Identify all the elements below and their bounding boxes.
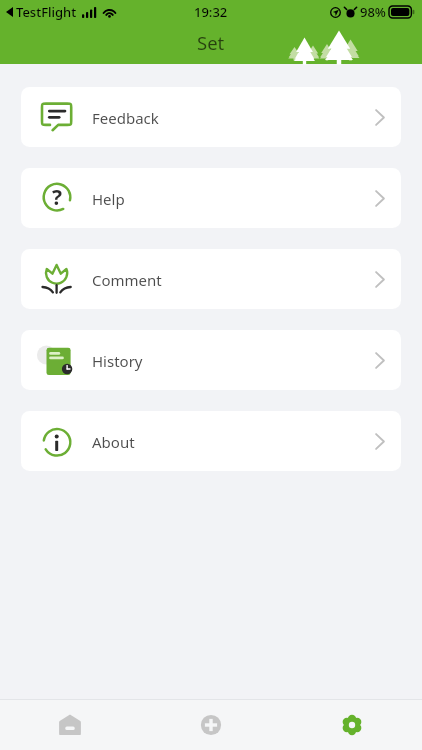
button[interactable]: Add xyxy=(140,700,281,750)
staticText: Help xyxy=(92,189,125,209)
staticText: Comment xyxy=(92,270,162,290)
button[interactable]: About xyxy=(21,411,401,471)
staticText: Feedback xyxy=(92,108,159,128)
staticText: 19:32 xyxy=(194,3,228,21)
staticText: TestFlight xyxy=(16,3,77,21)
button[interactable]: Comment xyxy=(21,249,401,309)
button[interactable]: Feedback xyxy=(21,87,401,147)
button[interactable]: History xyxy=(21,330,401,390)
button[interactable]: ? xyxy=(21,168,401,228)
staticText: Set xyxy=(197,30,225,55)
button[interactable]: Home xyxy=(0,700,140,750)
button[interactable]: Settings xyxy=(281,700,422,750)
staticText: History xyxy=(92,351,143,371)
staticText: About xyxy=(92,432,135,452)
staticText: ? xyxy=(52,183,63,212)
staticText: 98% xyxy=(360,3,386,21)
